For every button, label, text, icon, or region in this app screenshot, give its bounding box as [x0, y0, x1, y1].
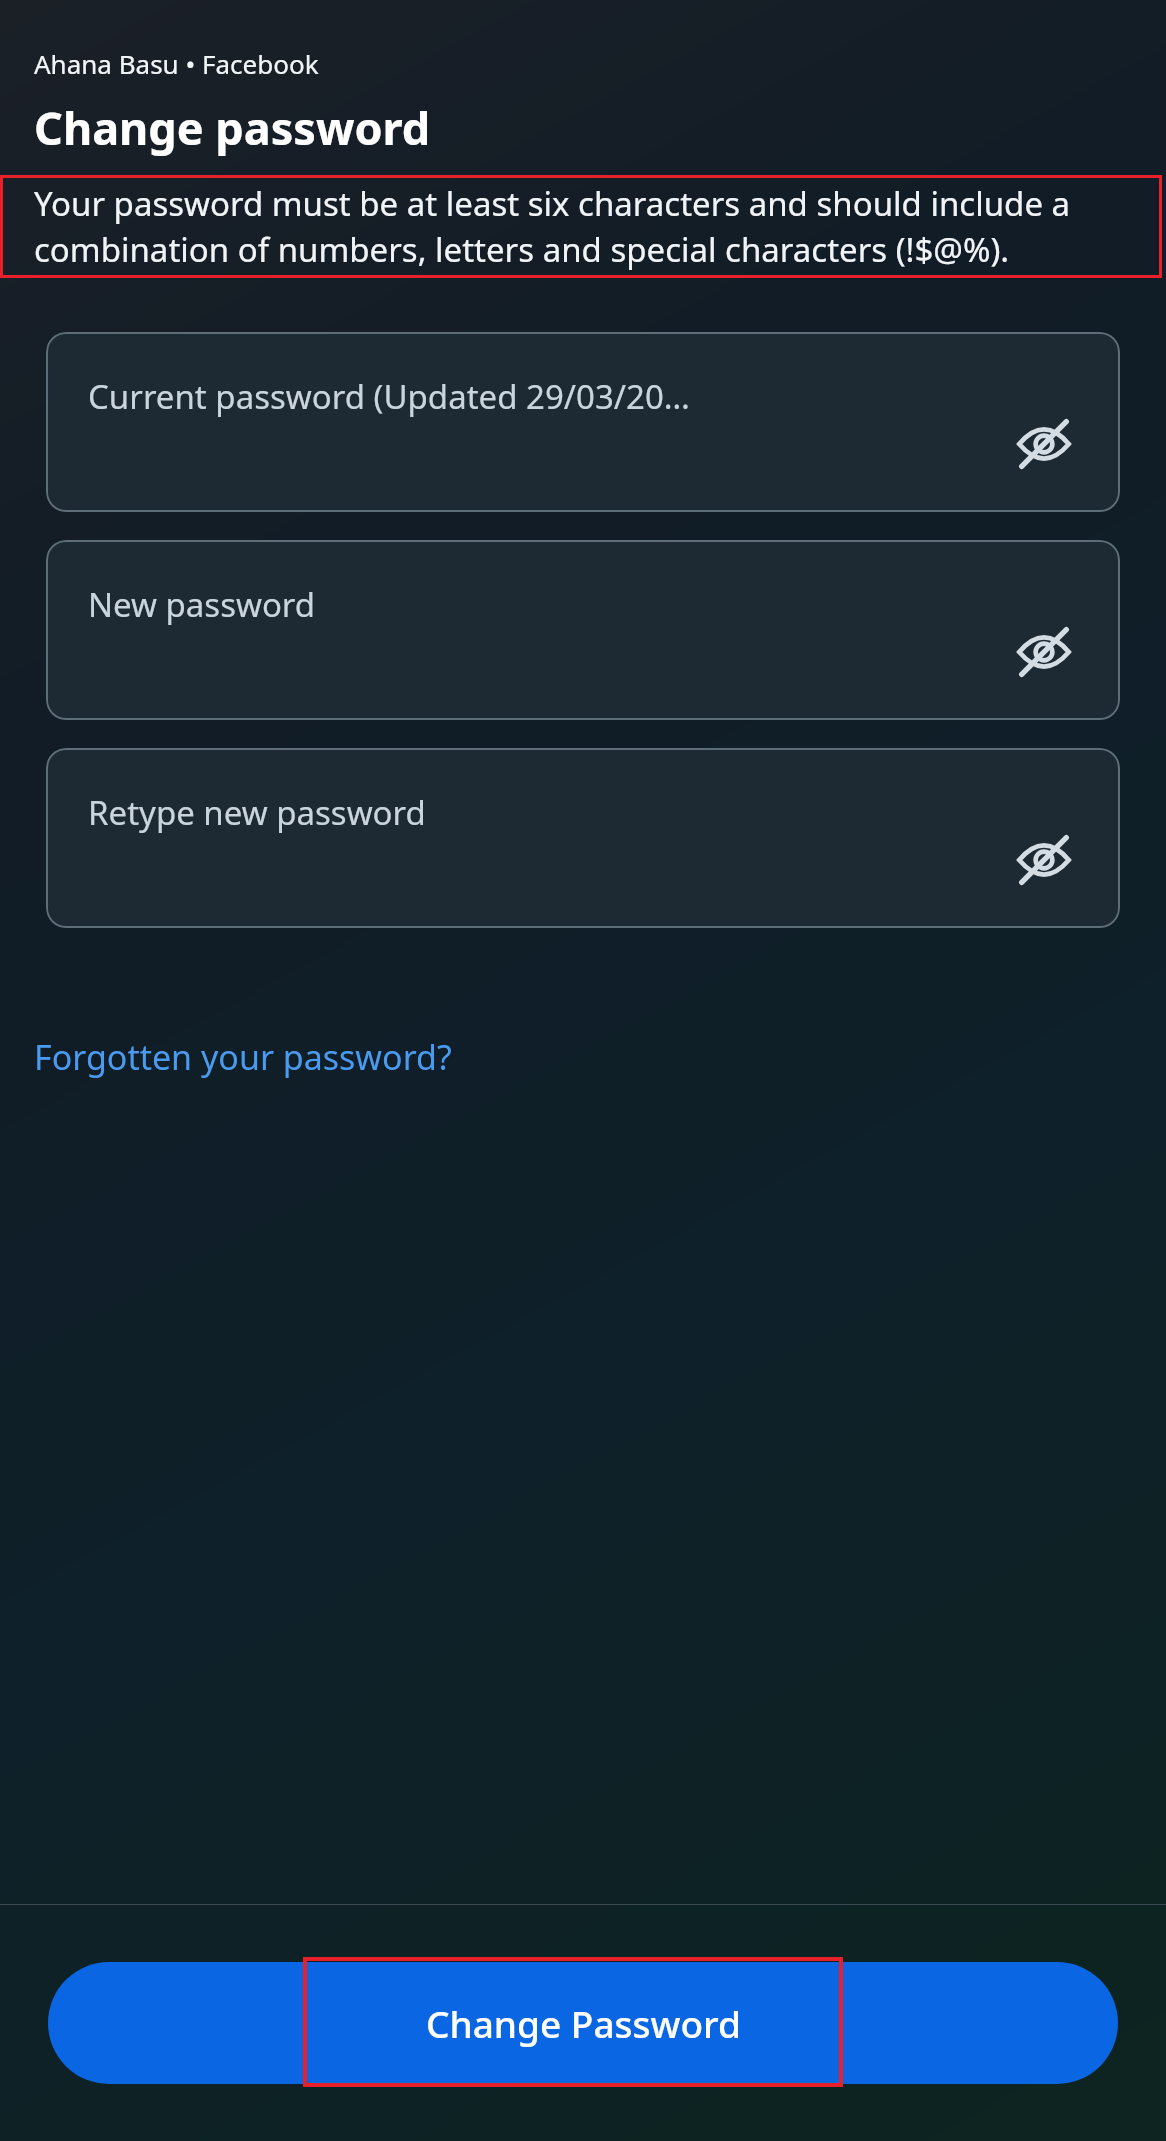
staticText: Current password (Updated 29/03/20…: [88, 374, 690, 419]
button[interactable]: Forgotten your password?: [34, 1028, 452, 1086]
button[interactable]: Change Password: [48, 1962, 1118, 2084]
staticText: Forgotten your password?: [34, 1034, 452, 1080]
button[interactable]: New password: [46, 540, 1120, 720]
button[interactable]: Current password (Updated 29/03/20…: [46, 332, 1120, 512]
staticText: Ahana Basu • Facebook: [34, 46, 319, 81]
staticText: Change Password: [426, 1998, 741, 2048]
button[interactable]: Show password: [1004, 820, 1084, 900]
staticText: Change password: [34, 97, 431, 158]
staticText: Retype new password: [88, 790, 426, 835]
button[interactable]: Retype new password: [46, 748, 1120, 928]
button[interactable]: Show password: [1004, 404, 1084, 484]
staticText: New password: [88, 582, 316, 627]
staticText: Your password must be at least six chara…: [34, 181, 1146, 272]
button[interactable]: Show password: [1004, 612, 1084, 692]
